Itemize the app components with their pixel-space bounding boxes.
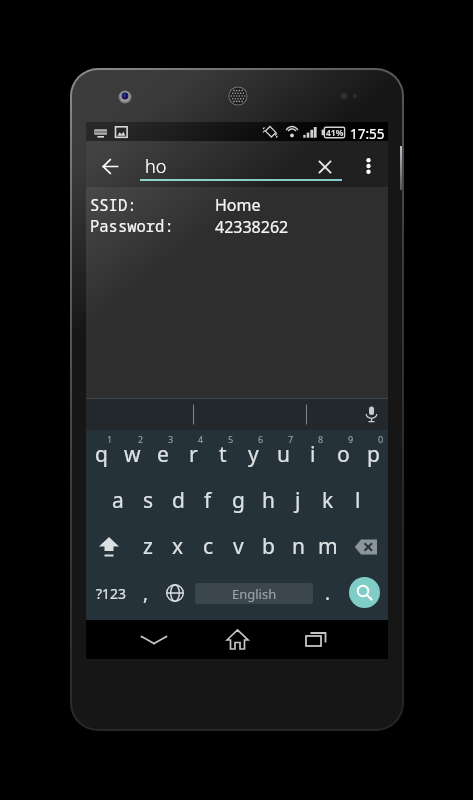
button[interactable]: 2 — [117, 430, 148, 478]
staticText: w — [124, 440, 141, 469]
staticText: 8 — [318, 433, 324, 445]
button[interactable]: Change language — [155, 570, 195, 620]
staticText: p — [367, 440, 380, 469]
staticText: j — [295, 486, 301, 515]
button[interactable]: Home — [210, 620, 265, 659]
staticText: m — [318, 532, 338, 561]
button[interactable]: Backspace — [343, 524, 388, 570]
staticText: 9 — [348, 433, 354, 445]
staticText: s — [143, 486, 154, 515]
staticText: v — [233, 532, 244, 561]
staticText: h — [262, 486, 275, 515]
button[interactable]: Search — [349, 577, 380, 608]
button[interactable]: Hide keyboard — [126, 620, 181, 659]
staticText: 1 — [107, 433, 113, 445]
staticText: l — [355, 486, 361, 515]
staticText: u — [277, 440, 290, 469]
staticText: SSID: — [90, 194, 137, 215]
staticText: f — [204, 486, 212, 515]
button[interactable]: 1 — [86, 430, 117, 478]
button[interactable]: v — [223, 524, 253, 570]
button[interactable]: Navigate up — [88, 141, 128, 187]
button[interactable]: Shift — [86, 524, 132, 570]
button[interactable]: l — [343, 478, 373, 524]
staticText: , — [143, 580, 149, 606]
staticText: d — [172, 486, 185, 515]
staticText: ?123 — [96, 584, 127, 603]
button[interactable]: 3 — [148, 430, 178, 478]
staticText: z — [143, 532, 153, 561]
button[interactable]: 4 — [178, 430, 208, 478]
button[interactable]: s — [133, 478, 163, 524]
staticText: 17:55 — [350, 125, 385, 143]
staticText: 41% — [326, 127, 344, 139]
staticText: i — [310, 440, 316, 469]
staticText: 4 — [198, 433, 204, 445]
staticText: y — [248, 440, 259, 469]
staticText: 2 — [138, 433, 144, 445]
button[interactable]: , — [131, 570, 160, 620]
button[interactable]: h — [253, 478, 283, 524]
staticText: n — [292, 532, 305, 561]
staticText: 3 — [168, 433, 174, 445]
staticText: e — [157, 440, 169, 469]
staticText: q — [95, 440, 108, 469]
button[interactable]: ho — [140, 141, 345, 187]
staticText: ho — [145, 154, 167, 179]
button[interactable]: Recent apps — [288, 620, 343, 659]
button[interactable]: 8 — [298, 430, 328, 478]
button[interactable]: 6 — [238, 430, 268, 478]
button[interactable]: More options — [356, 141, 388, 187]
button[interactable]: 7 — [268, 430, 298, 478]
button[interactable]: k — [313, 478, 343, 524]
button[interactable]: c — [193, 524, 223, 570]
button[interactable]: x — [163, 524, 193, 570]
button[interactable]: . — [313, 570, 343, 620]
staticText: o — [337, 440, 350, 469]
button[interactable]: z — [132, 524, 163, 570]
staticText: a — [112, 486, 124, 515]
staticText: b — [262, 532, 275, 561]
staticText: t — [219, 440, 227, 469]
button[interactable]: English — [195, 583, 313, 604]
staticText: g — [232, 486, 245, 515]
button[interactable]: f — [193, 478, 223, 524]
button[interactable]: 5 — [208, 430, 238, 478]
staticText: r — [189, 440, 198, 469]
staticText: 0 — [378, 433, 384, 445]
button[interactable]: ?123 — [91, 570, 131, 620]
staticText: 6 — [258, 433, 264, 445]
button[interactable]: n — [283, 524, 313, 570]
button[interactable]: g — [223, 478, 253, 524]
button[interactable]: m — [313, 524, 343, 570]
button[interactable]: a — [102, 478, 133, 524]
staticText: Home — [215, 194, 261, 216]
staticText: . — [325, 580, 331, 606]
staticText: 42338262 — [215, 216, 289, 238]
staticText: k — [322, 486, 334, 515]
staticText: 5 — [228, 433, 234, 445]
button[interactable]: Voice input — [354, 398, 388, 430]
button[interactable]: 0 — [358, 430, 388, 478]
button[interactable]: b — [253, 524, 283, 570]
staticText: c — [203, 532, 214, 561]
staticText: English — [232, 585, 277, 603]
button[interactable]: Clear search — [306, 141, 346, 187]
button[interactable]: 9 — [328, 430, 358, 478]
button[interactable]: d — [163, 478, 193, 524]
button[interactable]: j — [283, 478, 313, 524]
staticText: x — [172, 532, 184, 561]
staticText: Password: — [90, 215, 174, 236]
staticText: 7 — [288, 433, 294, 445]
